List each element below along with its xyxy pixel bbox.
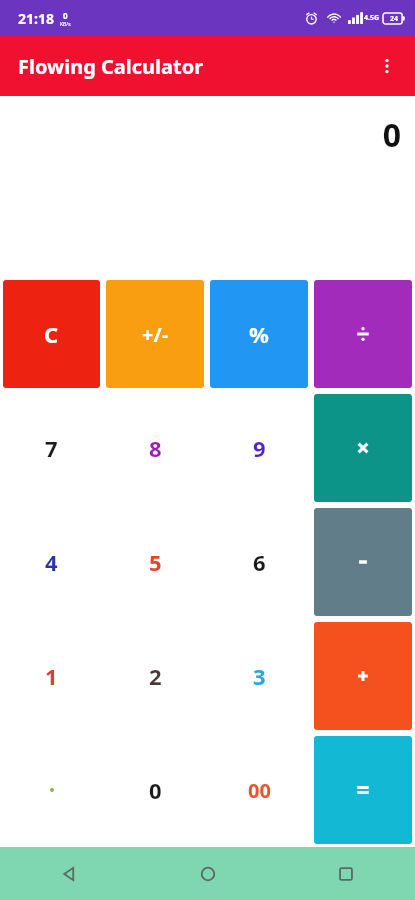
button[interactable]: 7 <box>3 394 100 502</box>
staticText: 6 <box>253 547 266 577</box>
button[interactable]: Recent apps <box>277 847 415 900</box>
button[interactable]: More options <box>365 44 409 88</box>
button[interactable]: 9 <box>210 394 308 502</box>
staticText: 1 <box>45 661 58 691</box>
staticText: Flowing Calculator <box>18 53 204 80</box>
staticText: KB/s <box>60 21 71 28</box>
button[interactable]: Back <box>0 847 139 900</box>
staticText: 0 <box>63 10 68 21</box>
button[interactable]: 5 <box>106 508 204 616</box>
button[interactable]: 3 <box>210 622 308 730</box>
button[interactable]: C <box>3 280 100 388</box>
staticText: +/- <box>142 321 169 348</box>
button[interactable]: 6 <box>210 508 308 616</box>
button[interactable]: Home <box>139 847 277 900</box>
button[interactable]: % <box>210 280 308 388</box>
staticText: 4 <box>45 547 58 577</box>
button[interactable]: 00 <box>210 736 308 844</box>
button[interactable]: Decimal point <box>3 736 100 844</box>
button[interactable]: Equals <box>314 736 412 844</box>
staticText: 4.5G <box>364 13 380 23</box>
button[interactable]: 2 <box>106 622 204 730</box>
staticText: 24 <box>390 14 399 24</box>
staticText: 5 <box>149 547 162 577</box>
button[interactable]: Subtract <box>314 508 412 616</box>
button[interactable]: Divide <box>314 280 412 388</box>
button[interactable]: Add <box>314 622 412 730</box>
button[interactable]: Multiply <box>314 394 412 502</box>
staticText: 0 <box>382 113 401 157</box>
button[interactable]: 1 <box>3 622 100 730</box>
staticText: 7 <box>45 433 58 463</box>
button[interactable]: 4 <box>3 508 100 616</box>
staticText: 8 <box>149 433 162 463</box>
button[interactable]: 0 <box>106 736 204 844</box>
staticText: 3 <box>253 661 266 691</box>
staticText: % <box>249 319 269 349</box>
button[interactable]: +/- <box>106 280 204 388</box>
button[interactable]: 8 <box>106 394 204 502</box>
staticText: 0 <box>149 775 162 805</box>
staticText: C <box>44 319 59 349</box>
staticText: 00 <box>248 777 271 804</box>
staticText: 9 <box>253 433 266 463</box>
staticText: 2 <box>149 661 162 691</box>
staticText: 21:18 <box>18 9 54 28</box>
